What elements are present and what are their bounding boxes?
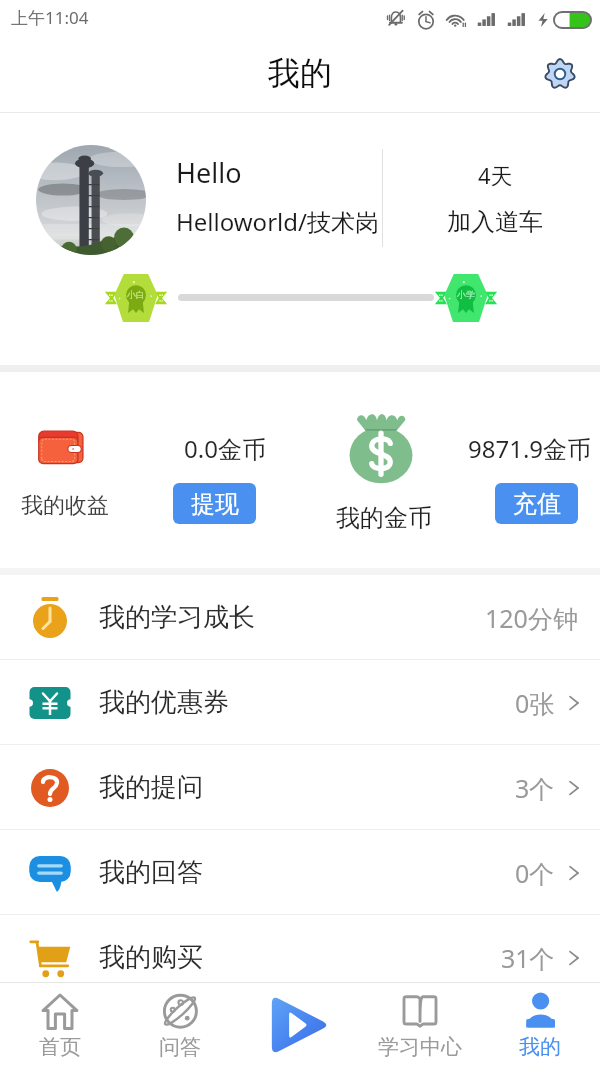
button[interactable]: 学习中心: [360, 983, 480, 1067]
staticText: 0张: [515, 686, 555, 720]
button[interactable]: 充值: [495, 483, 578, 524]
button[interactable]: 问答: [120, 983, 240, 1067]
staticText: 问答: [159, 1034, 201, 1060]
staticText: 充值: [513, 489, 561, 519]
staticText: 我的: [519, 1034, 561, 1060]
staticText: 我的购买: [99, 941, 203, 974]
staticText: 我的学习成长: [99, 601, 255, 634]
staticText: 我的金币: [336, 503, 432, 533]
staticText: 0.0金币: [184, 432, 266, 465]
staticText: 我的回答: [99, 856, 203, 889]
staticText: Hello: [176, 154, 242, 191]
staticText: 我的: [268, 53, 332, 93]
staticText: 9871.9金币: [468, 432, 592, 465]
staticText: 我的提问: [99, 771, 203, 804]
staticText: 我的收益: [21, 492, 109, 520]
button[interactable]: 我的提问: [0, 745, 600, 830]
staticText: 首页: [39, 1034, 81, 1060]
staticText: 提现: [191, 489, 239, 519]
button[interactable]: 我的优惠券: [0, 660, 600, 745]
staticText: 0个: [515, 856, 555, 890]
staticText: 3个: [515, 771, 555, 805]
button[interactable]: 我的回答: [0, 830, 600, 915]
staticText: 31个: [501, 941, 555, 975]
staticText: 小白: [127, 289, 145, 300]
staticText: 我的优惠券: [99, 686, 229, 719]
button[interactable]: 首页: [0, 983, 120, 1067]
button[interactable]: Play: [240, 983, 360, 1067]
button[interactable]: 我的学习成长: [0, 575, 600, 660]
staticText: 学习中心: [378, 1034, 462, 1060]
button[interactable]: 我的购买: [0, 915, 600, 1000]
staticText: 120分钟: [485, 601, 578, 635]
button[interactable]: Settings: [538, 52, 582, 96]
button[interactable]: 我的: [480, 983, 600, 1067]
staticText: 加入道车: [447, 207, 543, 237]
staticText: Helloworld/技术岗: [176, 205, 379, 238]
staticText: 小学: [457, 289, 475, 300]
staticText: 上午11:04: [11, 6, 89, 29]
staticText: 4天: [478, 160, 513, 190]
button[interactable]: 提现: [173, 483, 256, 524]
